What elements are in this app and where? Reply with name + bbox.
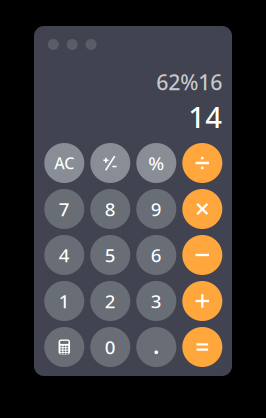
- button[interactable]: Divide: [182, 143, 222, 183]
- button[interactable]: Five: [90, 235, 130, 275]
- staticText: 4: [59, 243, 70, 267]
- staticText: 9: [151, 197, 162, 221]
- staticText: 8: [105, 197, 116, 221]
- staticText: 0: [105, 335, 116, 359]
- button[interactable]: Decimal point: [136, 327, 176, 367]
- staticText: 14: [188, 97, 222, 136]
- staticText: AC: [54, 152, 74, 174]
- button[interactable]: Add: [182, 281, 222, 321]
- staticText: %: [148, 151, 164, 175]
- button[interactable]: Eight: [90, 189, 130, 229]
- staticText: 6: [151, 243, 162, 267]
- button[interactable]: Multiply: [182, 189, 222, 229]
- staticText: 62%16: [156, 68, 222, 96]
- button[interactable]: Equals: [182, 327, 222, 367]
- staticText: 2: [105, 289, 116, 313]
- button[interactable]: Zero: [90, 327, 130, 367]
- staticText: 3: [151, 289, 162, 313]
- staticText: 5: [105, 243, 116, 267]
- button[interactable]: Three: [136, 281, 176, 321]
- button[interactable]: Percent: [136, 143, 176, 183]
- button[interactable]: Toggle sign: [90, 143, 130, 183]
- button[interactable]: Subtract: [182, 235, 222, 275]
- button[interactable]: Four: [44, 235, 84, 275]
- staticText: 7: [59, 197, 70, 221]
- button[interactable]: One: [44, 281, 84, 321]
- button[interactable]: Six: [136, 235, 176, 275]
- button[interactable]: Nine: [136, 189, 176, 229]
- button[interactable]: All clear: [44, 143, 84, 183]
- button[interactable]: Calculator: [44, 327, 84, 367]
- staticText: 1: [59, 289, 70, 313]
- button[interactable]: Two: [90, 281, 130, 321]
- button[interactable]: Seven: [44, 189, 84, 229]
